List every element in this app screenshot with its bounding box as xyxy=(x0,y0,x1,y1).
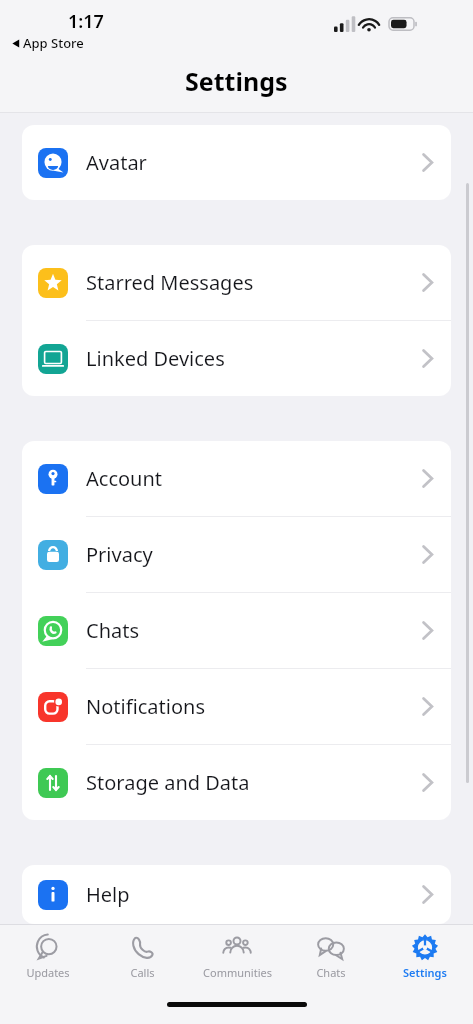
staticText: Chats xyxy=(316,965,346,980)
button[interactable]: Avatar xyxy=(22,125,451,200)
staticText: Help xyxy=(86,881,130,908)
button[interactable]: Storage and Data xyxy=(22,745,451,820)
staticText: Storage and Data xyxy=(86,769,250,796)
staticText: Settings xyxy=(185,64,288,98)
button[interactable]: Chats xyxy=(285,925,377,980)
button[interactable]: Linked Devices xyxy=(22,321,451,396)
staticText: 1:17 xyxy=(68,9,104,34)
button[interactable]: Calls xyxy=(96,925,188,980)
button[interactable]: Starred Messages xyxy=(22,245,451,321)
staticText: Calls xyxy=(130,965,155,980)
staticText: Chats xyxy=(86,617,140,644)
staticText: Updates xyxy=(26,965,70,980)
staticText: Settings xyxy=(403,965,447,980)
staticText: Account xyxy=(86,465,163,492)
button[interactable]: Settings xyxy=(379,925,471,980)
staticText: Avatar xyxy=(86,149,147,176)
staticText: App Store xyxy=(23,34,84,52)
staticText: Communities xyxy=(203,965,272,980)
staticText: Privacy xyxy=(86,541,153,568)
button[interactable]: Privacy xyxy=(22,517,451,593)
button[interactable]: Help xyxy=(22,865,451,924)
button[interactable]: Account xyxy=(22,441,451,517)
staticText: Starred Messages xyxy=(86,269,254,296)
staticText: Notifications xyxy=(86,693,205,720)
button[interactable]: Chats xyxy=(22,593,451,669)
button[interactable]: Updates xyxy=(2,925,94,980)
staticText: Linked Devices xyxy=(86,345,225,372)
button[interactable]: Communities xyxy=(191,925,283,980)
button[interactable]: Notifications xyxy=(22,669,451,745)
